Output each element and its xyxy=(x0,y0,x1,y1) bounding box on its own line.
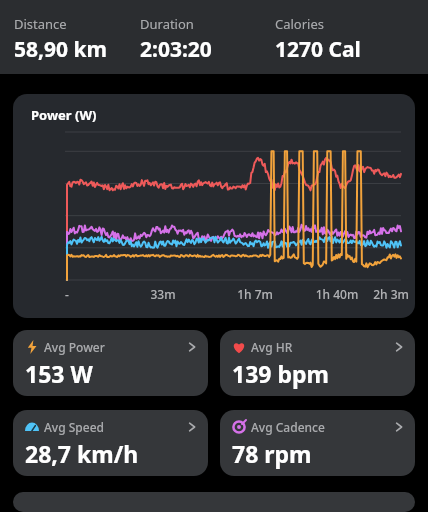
staticText: 28,7 km/h xyxy=(25,438,139,469)
button[interactable]: Avg Cadence xyxy=(220,410,415,476)
staticText: - xyxy=(57,286,77,302)
staticText: 33m xyxy=(143,286,183,302)
staticText: Avg Cadence xyxy=(251,419,393,435)
staticText: Duration xyxy=(140,15,194,33)
staticText: 1h 40m xyxy=(309,286,365,302)
staticText: 58,90 km xyxy=(14,35,107,64)
staticText: 78 rpm xyxy=(232,438,312,469)
button[interactable]: Avg Speed xyxy=(13,410,208,476)
staticText: 2h 3m xyxy=(367,286,415,302)
staticText: 1h 7m xyxy=(231,286,279,302)
staticText: 1270 Cal xyxy=(275,35,361,64)
button[interactable]: Avg HR xyxy=(220,330,415,396)
staticText: 153 W xyxy=(25,358,93,389)
staticText: Calories xyxy=(275,15,325,33)
other: Open Avg HR xyxy=(393,341,405,353)
staticText: Avg Speed xyxy=(44,419,186,435)
staticText: 139 bpm xyxy=(232,358,329,389)
staticText: Avg HR xyxy=(251,339,393,355)
staticText: 2:03:20 xyxy=(140,35,212,64)
button[interactable]: Power (W) xyxy=(13,94,415,318)
other: Open Avg Power xyxy=(186,341,198,353)
staticText: Distance xyxy=(14,15,67,33)
button[interactable] xyxy=(13,492,415,512)
button[interactable]: Avg Power xyxy=(13,330,208,396)
staticText: Power (W) xyxy=(31,106,97,124)
other: Open Avg Cadence xyxy=(393,421,405,433)
staticText: Avg Power xyxy=(44,339,186,355)
other: Open Avg Speed xyxy=(186,421,198,433)
